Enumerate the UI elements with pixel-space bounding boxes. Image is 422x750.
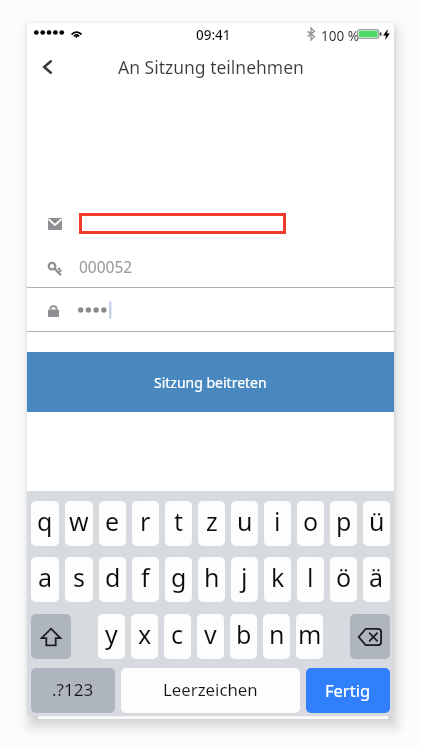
staticText: t xyxy=(174,504,184,538)
button[interactable]: q xyxy=(31,501,59,546)
staticText: q xyxy=(37,504,53,538)
button[interactable]: i xyxy=(264,501,291,546)
button[interactable]: h xyxy=(198,557,225,602)
button[interactable]: p xyxy=(330,501,357,546)
staticText: m xyxy=(298,617,322,651)
button[interactable]: .?123 xyxy=(31,668,115,713)
staticText: p xyxy=(336,504,352,538)
button[interactable]: Leerzeichen xyxy=(121,668,300,713)
staticText: o xyxy=(303,504,319,538)
button[interactable]: f xyxy=(132,557,159,602)
staticText: 09:41 xyxy=(196,26,231,44)
button[interactable]: d xyxy=(99,557,126,602)
button[interactable]: l xyxy=(297,557,324,602)
staticText: z xyxy=(206,504,218,538)
button[interactable]: e xyxy=(99,501,126,546)
button[interactable]: z xyxy=(198,501,225,546)
staticText: f xyxy=(141,560,150,594)
button[interactable]: Löschen xyxy=(350,614,390,659)
button[interactable]: Umschalttaste xyxy=(31,614,71,659)
button[interactable]: ö xyxy=(330,557,357,602)
button[interactable]: u xyxy=(231,501,258,546)
staticText: ä xyxy=(369,560,384,594)
staticText: a xyxy=(38,560,53,594)
button[interactable]: w xyxy=(65,501,93,546)
staticText: b xyxy=(236,617,252,651)
staticText: Fertig xyxy=(325,679,371,701)
button[interactable]: ä xyxy=(363,557,390,602)
staticText: .?123 xyxy=(52,678,94,701)
button[interactable]: Zurück xyxy=(29,49,65,85)
staticText: y xyxy=(105,617,118,651)
staticText: ü xyxy=(369,504,385,538)
staticText: g xyxy=(171,560,187,594)
button[interactable]: n xyxy=(263,614,290,659)
button[interactable]: Sitzung beitreten xyxy=(27,352,394,412)
staticText: s xyxy=(73,560,85,594)
staticText: e xyxy=(105,504,120,538)
staticText: k xyxy=(271,560,285,594)
button[interactable]: o xyxy=(297,501,324,546)
staticText: u xyxy=(237,504,253,538)
button[interactable]: x xyxy=(131,614,158,659)
staticText: n xyxy=(269,617,285,651)
button[interactable] xyxy=(79,213,286,234)
staticText: 000052 xyxy=(79,256,133,277)
staticText: v xyxy=(204,617,217,651)
button[interactable]: v xyxy=(197,614,224,659)
staticText: An Sitzung teilnehmen xyxy=(118,55,304,79)
button[interactable]: y xyxy=(98,614,125,659)
staticText: w xyxy=(69,504,89,538)
button[interactable]: Fertig xyxy=(306,668,390,713)
button[interactable]: t xyxy=(165,501,192,546)
button[interactable]: j xyxy=(231,557,258,602)
button[interactable]: g xyxy=(165,557,192,602)
staticText: d xyxy=(105,560,121,594)
staticText: Sitzung beitreten xyxy=(154,373,267,392)
button[interactable]: ü xyxy=(363,501,390,546)
staticText: x xyxy=(138,617,152,651)
button[interactable]: m xyxy=(296,614,323,659)
staticText: l xyxy=(307,560,314,594)
staticText: c xyxy=(171,617,184,651)
staticText: j xyxy=(241,560,248,594)
button[interactable]: b xyxy=(230,614,257,659)
staticText: r xyxy=(140,504,151,538)
button[interactable]: k xyxy=(264,557,291,602)
button[interactable]: a xyxy=(31,557,59,602)
button[interactable]: r xyxy=(132,501,159,546)
staticText: Leerzeichen xyxy=(163,678,258,701)
button[interactable]: c xyxy=(164,614,191,659)
staticText: i xyxy=(274,504,281,538)
staticText: 100 % xyxy=(321,27,359,45)
button[interactable]: s xyxy=(65,557,93,602)
staticText: h xyxy=(204,560,220,594)
staticText: ö xyxy=(336,560,352,594)
